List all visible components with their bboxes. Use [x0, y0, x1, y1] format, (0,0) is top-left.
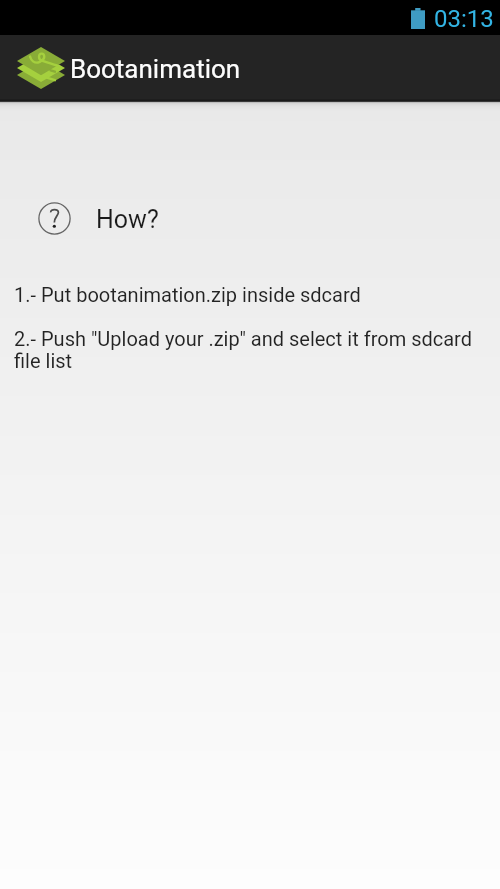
- button[interactable]: How?: [0, 202, 500, 235]
- staticText: 03:13: [434, 5, 494, 33]
- staticText: How?: [96, 205, 159, 234]
- button[interactable]: Bootanimation: [0, 35, 500, 99]
- staticText: 1.- Put bootanimation.zip inside sdcard: [14, 283, 361, 306]
- staticText: 2.- Push "Upload your .zip" and select i…: [14, 327, 486, 373]
- other: Battery: [411, 8, 425, 29]
- staticText: Bootanimation: [70, 54, 241, 84]
